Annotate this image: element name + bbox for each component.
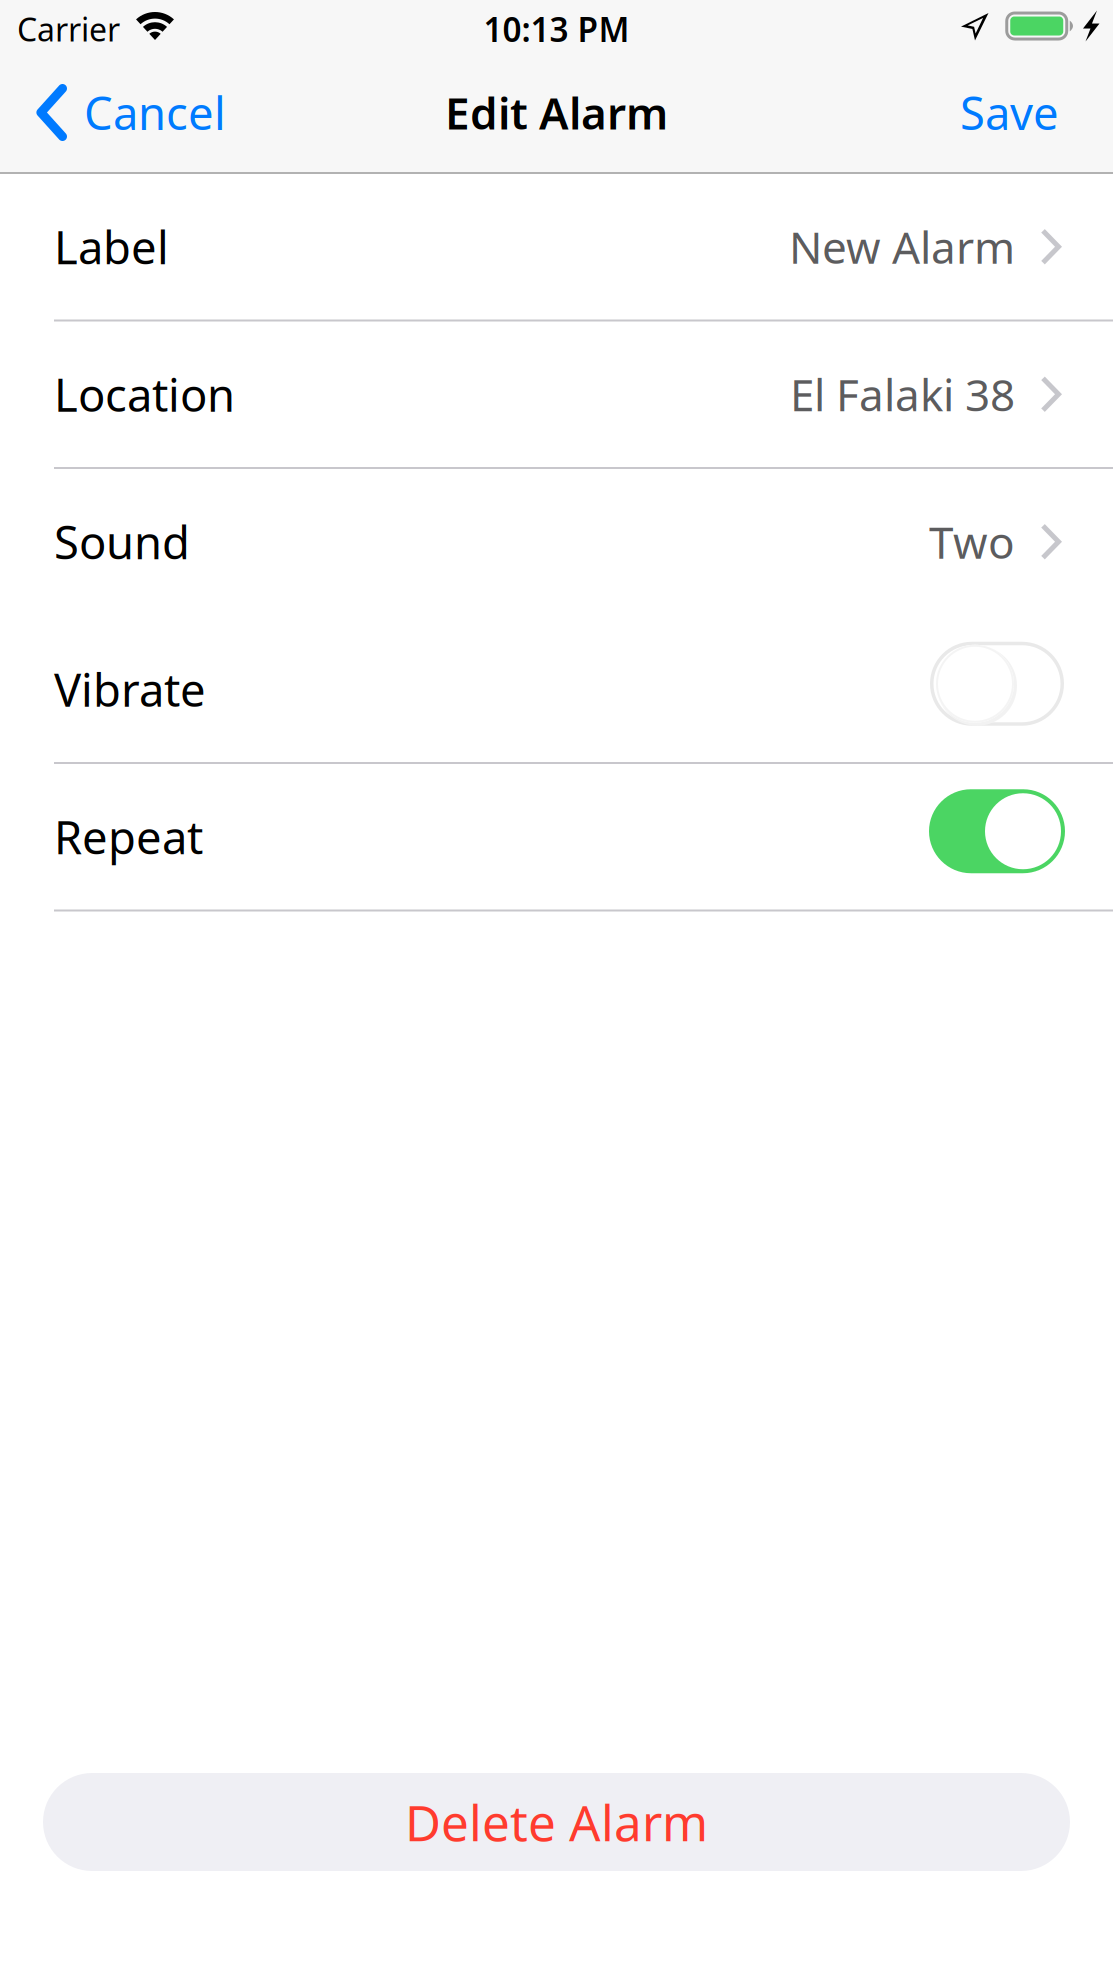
button[interactable]: Label (0, 174, 1113, 321)
button[interactable]: Repeat (0, 764, 1113, 911)
staticText: Sound (54, 512, 190, 572)
staticText: Save (960, 82, 1059, 143)
staticText: El Falaki 38 (790, 365, 1015, 423)
button[interactable]: Sound (0, 469, 1113, 616)
staticText: 10:13 PM (483, 7, 629, 51)
button[interactable]: Vibrate (0, 616, 1113, 764)
staticText: Cancel (84, 82, 226, 143)
button[interactable]: Delete Alarm (43, 1773, 1070, 1871)
staticText: Carrier (17, 8, 120, 50)
staticText: Two (929, 512, 1015, 571)
staticText: Repeat (54, 807, 203, 867)
button[interactable]: Location (0, 321, 1113, 469)
button[interactable]: Save (930, 58, 1113, 167)
staticText: Delete Alarm (405, 1789, 708, 1855)
staticText: Label (54, 217, 169, 277)
button[interactable]: Cancel (0, 58, 248, 167)
staticText: New Alarm (789, 217, 1015, 276)
staticText: Edit Alarm (445, 83, 668, 142)
staticText: Vibrate (54, 659, 206, 719)
staticText: Location (54, 364, 235, 424)
